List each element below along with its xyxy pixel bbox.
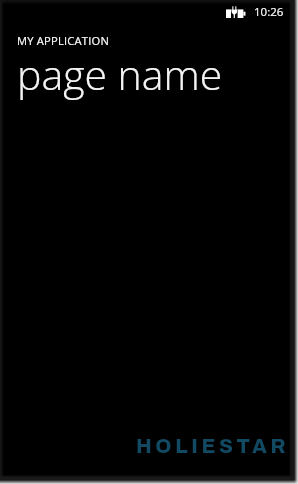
button[interactable]: 10:26 — [254, 4, 284, 20]
button[interactable]: Battery charging — [226, 6, 247, 18]
button[interactable]: page name — [17, 46, 223, 102]
staticText: HOLIESTAR — [136, 435, 290, 457]
button[interactable]: MY APPLICATION — [17, 33, 110, 48]
